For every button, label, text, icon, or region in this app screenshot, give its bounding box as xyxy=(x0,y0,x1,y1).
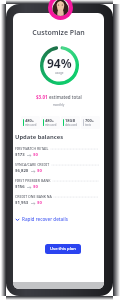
staticText: Use this plan xyxy=(50,246,76,252)
staticText: monthly xyxy=(13,103,104,107)
staticText: FIRSTWATCH RETAIL xyxy=(15,146,49,151)
staticText: $156 xyxy=(15,184,25,190)
staticText: $0 xyxy=(33,152,38,158)
staticText: CREDIT ONE BANK NA xyxy=(15,194,52,199)
staticText: $1,953 xyxy=(15,200,29,206)
staticText: 18GB xyxy=(65,118,76,123)
staticText: $6,820 xyxy=(15,168,29,174)
button[interactable]: 18GB xyxy=(61,116,80,129)
staticText: FIRST PREMIER BANK xyxy=(15,178,51,183)
button[interactable]: 480+ xyxy=(21,116,40,129)
button[interactable]: Use this plan xyxy=(45,244,81,254)
staticText: Rapid recover details xyxy=(22,216,68,222)
staticText: $3.01 xyxy=(36,94,49,100)
staticText: 480+ xyxy=(25,118,35,123)
staticText: $0 xyxy=(37,168,42,174)
staticText: min used xyxy=(25,123,37,127)
button[interactable]: Rapid recover details xyxy=(15,216,68,222)
staticText: 700+ xyxy=(85,118,95,123)
button[interactable]: 700+ xyxy=(81,116,100,129)
button[interactable]: Profile photo xyxy=(48,0,73,20)
staticText: Customize Plan xyxy=(13,28,104,38)
staticText: $173 xyxy=(15,152,25,158)
button[interactable]: 480+ xyxy=(41,116,60,129)
staticText: 94% xyxy=(47,55,72,71)
staticText: usage xyxy=(55,71,64,75)
staticText: SYNCA/CARE CREDIT xyxy=(15,162,50,167)
staticText: data used xyxy=(65,123,78,127)
staticText: 480+ xyxy=(45,118,55,123)
staticText: min used xyxy=(45,123,57,127)
staticText: $0 xyxy=(33,184,38,190)
staticText: $0 xyxy=(37,200,42,206)
staticText: Update balances xyxy=(15,133,64,141)
staticText: texts xyxy=(85,123,91,127)
staticText: estimated total xyxy=(49,94,82,100)
